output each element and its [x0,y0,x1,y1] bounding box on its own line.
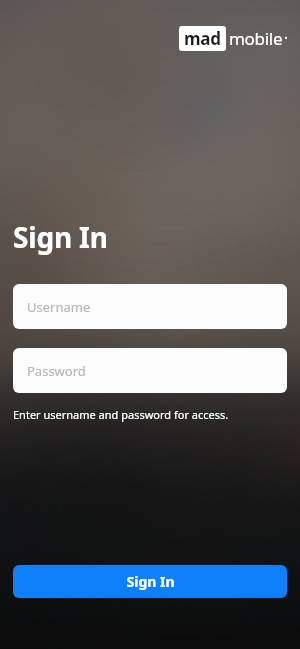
button[interactable]: Password [13,348,287,393]
staticText: Password [27,362,86,380]
staticText: mad [184,27,221,50]
staticText: Sign In [126,572,175,591]
button[interactable]: Username [13,284,287,329]
staticText: Enter username and password for access. [13,407,229,422]
staticText: Sign In [13,218,108,256]
button[interactable]: Sign In [13,565,287,598]
staticText: mobile [229,27,283,50]
staticText: Username [27,298,91,316]
